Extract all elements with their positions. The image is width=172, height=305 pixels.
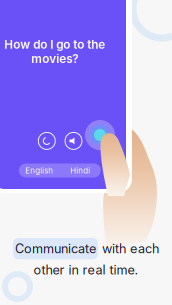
staticText: Hindi (70, 166, 90, 175)
staticText: other in real time. (33, 262, 138, 278)
button[interactable]: Swap languages (38, 132, 55, 149)
button[interactable]: Record (92, 132, 109, 149)
staticText: English (25, 166, 53, 175)
staticText: Communicate (15, 241, 96, 256)
button[interactable]: Hindi (60, 163, 101, 177)
button[interactable]: Play translation (65, 132, 82, 149)
staticText: with each (98, 241, 159, 256)
staticText: How do I go to the movies? (4, 37, 105, 66)
button[interactable]: English (19, 163, 60, 177)
